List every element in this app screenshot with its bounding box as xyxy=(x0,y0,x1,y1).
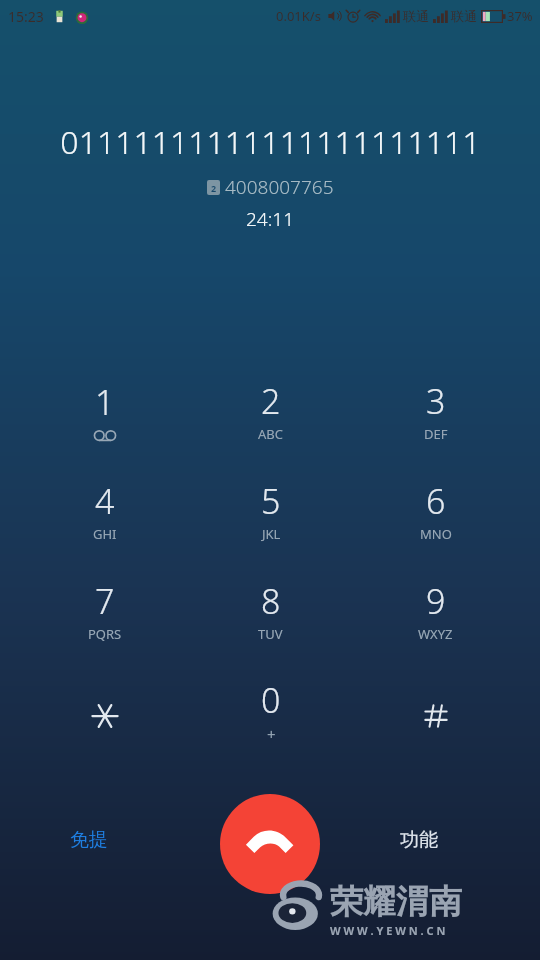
staticText: 3 xyxy=(426,378,446,424)
staticText: 2 xyxy=(211,182,217,194)
button[interactable]: 3 xyxy=(353,360,518,460)
staticText: 5 xyxy=(261,478,281,524)
staticText: 1 xyxy=(95,379,115,425)
button[interactable]: 1 xyxy=(22,360,188,460)
staticText: 0 xyxy=(261,677,281,723)
staticText: 功能 xyxy=(400,828,438,852)
staticText: 联通 xyxy=(451,8,477,24)
staticText: + xyxy=(267,724,276,744)
button[interactable]: 7 xyxy=(22,560,188,660)
staticText: GHI xyxy=(93,525,117,543)
staticText: 8 xyxy=(261,578,281,624)
button[interactable]: 0 xyxy=(188,660,353,760)
button[interactable]: 8 xyxy=(188,560,353,660)
staticText: TUV xyxy=(258,625,283,643)
staticText: 联通 xyxy=(403,8,429,24)
button[interactable] xyxy=(22,660,188,760)
staticText: MNO xyxy=(420,525,452,543)
staticText: DEF xyxy=(424,425,448,443)
staticText: 37% xyxy=(507,7,533,25)
button[interactable]: 功能 xyxy=(386,822,452,858)
staticText: 2 xyxy=(261,378,281,424)
staticText: 4 xyxy=(95,478,115,524)
staticText: 荣耀渭南 xyxy=(330,881,462,923)
button[interactable]: 5 xyxy=(188,460,353,560)
staticText: WXYZ xyxy=(418,625,453,643)
staticText: ABC xyxy=(258,425,283,443)
button[interactable]: 免提 xyxy=(56,822,122,858)
staticText: 0.01K/s xyxy=(276,7,321,25)
staticText: 15:23 xyxy=(8,7,44,26)
button[interactable]: 4 xyxy=(22,460,188,560)
staticText: 7 xyxy=(95,578,115,624)
staticText: 01111111111111111111111 xyxy=(60,120,481,164)
staticText: 9 xyxy=(426,578,446,624)
button[interactable]: 6 xyxy=(353,460,518,560)
staticText: W W W . Y E W N . C N xyxy=(330,923,446,938)
staticText: 4008007765 xyxy=(225,174,334,200)
button[interactable]: 2 xyxy=(188,360,353,460)
staticText: 6 xyxy=(426,478,446,524)
button[interactable] xyxy=(353,660,518,760)
button[interactable]: 9 xyxy=(353,560,518,660)
staticText: JKL xyxy=(262,525,281,543)
staticText: PQRS xyxy=(88,625,122,643)
staticText: 免提 xyxy=(70,828,108,852)
button[interactable]: End call xyxy=(220,794,320,894)
staticText: 24:11 xyxy=(246,206,295,232)
